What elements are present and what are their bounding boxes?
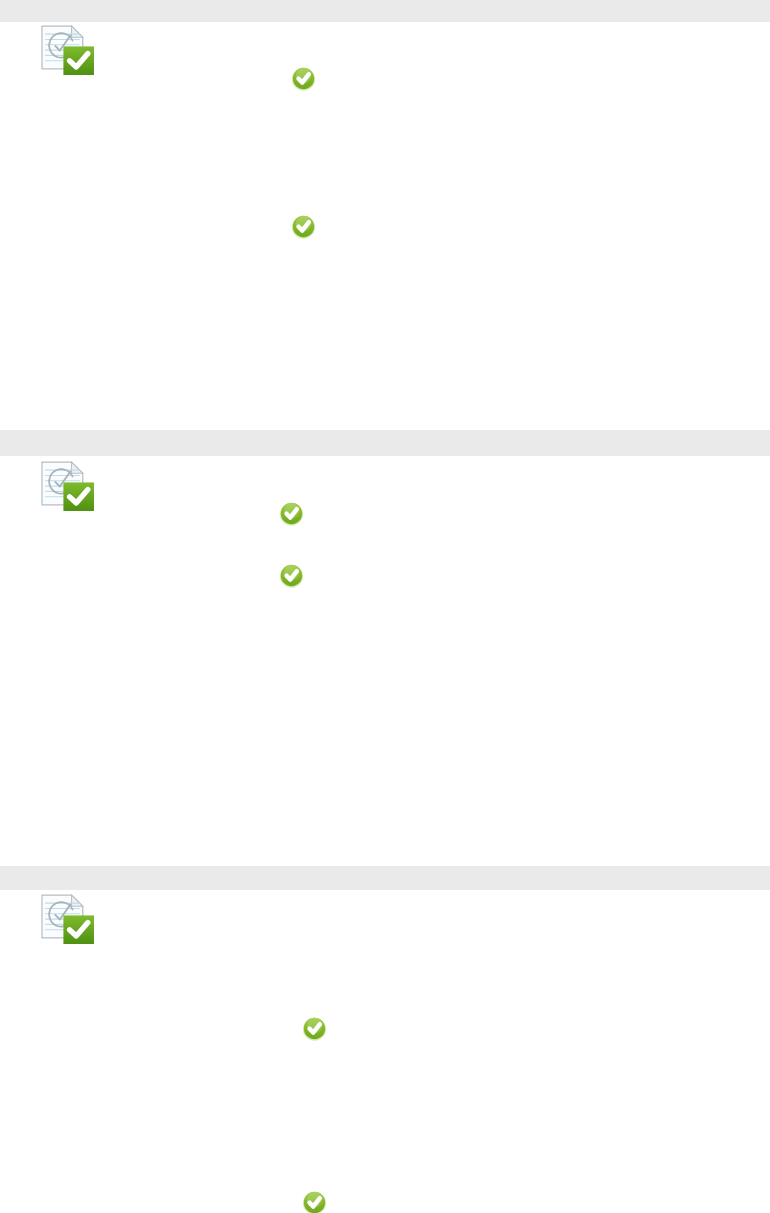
- button[interactable]: Verified: [280, 502, 303, 525]
- button[interactable]: Completed document: [41, 461, 95, 512]
- button[interactable]: Completed document: [41, 894, 95, 945]
- button[interactable]: Verified: [292, 215, 315, 238]
- button[interactable]: Completed document: [41, 25, 95, 76]
- button[interactable]: Verified: [292, 67, 315, 90]
- button[interactable]: Verified: [280, 564, 303, 587]
- button[interactable]: Verified: [303, 1017, 326, 1040]
- button[interactable]: Verified: [303, 1191, 326, 1213]
